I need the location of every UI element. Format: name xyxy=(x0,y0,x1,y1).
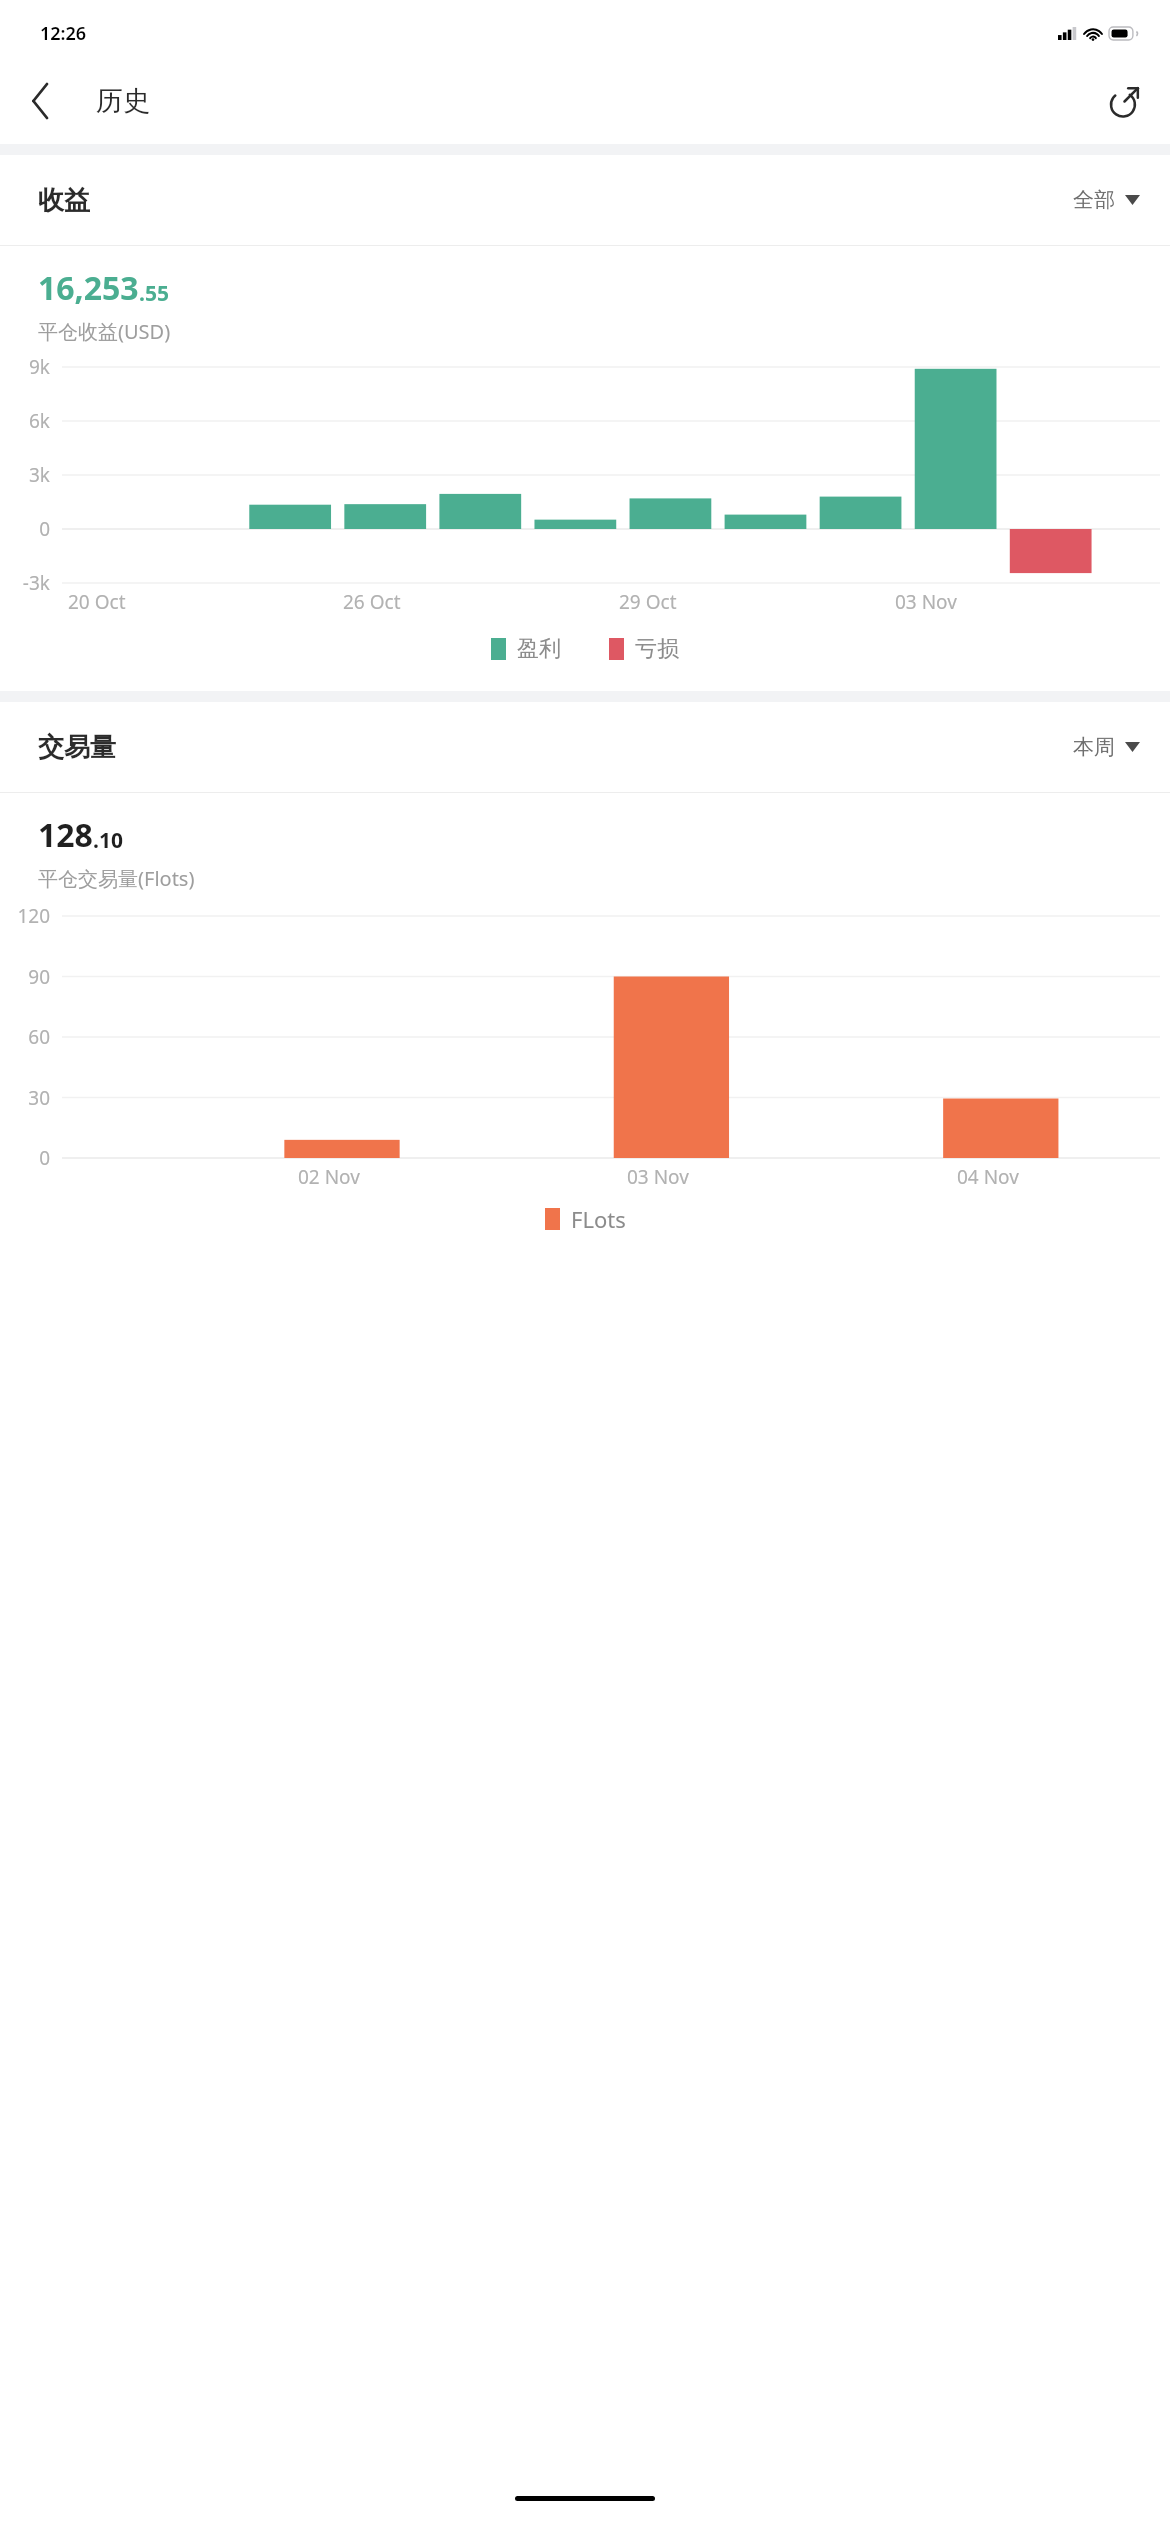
button[interactable]: Share xyxy=(1094,71,1154,131)
staticText: 收益 xyxy=(38,184,90,217)
staticText: 03 Nov xyxy=(895,589,957,615)
button[interactable]: 亏损 xyxy=(607,631,681,667)
button[interactable]: Back xyxy=(12,72,70,130)
button[interactable]: 本周 xyxy=(1067,724,1146,770)
staticText: 0 xyxy=(0,516,50,542)
staticText: -3k xyxy=(0,570,50,596)
staticText: 交易量 xyxy=(38,731,116,764)
staticText: .55 xyxy=(139,279,169,308)
button[interactable]: 全部 xyxy=(1067,177,1146,223)
staticText: 29 Oct xyxy=(619,589,677,615)
staticText: 盈利 xyxy=(517,635,561,663)
staticText: 128 xyxy=(38,813,93,857)
staticText: 20 Oct xyxy=(68,589,126,615)
staticText: 120 xyxy=(0,903,50,929)
staticText: .10 xyxy=(93,826,123,855)
staticText: 30 xyxy=(0,1085,50,1111)
staticText: 本周 xyxy=(1073,734,1115,760)
staticText: 3k xyxy=(0,462,50,488)
staticText: 26 Oct xyxy=(343,589,401,615)
staticText: 16,253 xyxy=(38,266,139,310)
staticText: 60 xyxy=(0,1024,50,1050)
staticText: 亏损 xyxy=(635,635,679,663)
staticText: 90 xyxy=(0,964,50,990)
staticText: 0 xyxy=(0,1145,50,1171)
button[interactable]: FLots xyxy=(543,1200,628,1238)
staticText: 全部 xyxy=(1073,187,1115,213)
staticText: 02 Nov xyxy=(298,1164,360,1190)
staticText: FLots xyxy=(571,1204,626,1234)
staticText: 12:26 xyxy=(40,21,87,46)
staticText: 03 Nov xyxy=(627,1164,689,1190)
staticText: 历史 xyxy=(96,84,150,118)
staticText: 6k xyxy=(0,408,50,434)
button[interactable]: 盈利 xyxy=(489,631,563,667)
staticText: 04 Nov xyxy=(957,1164,1019,1190)
staticText: 平仓收益(USD) xyxy=(38,318,171,345)
staticText: 平仓交易量(Flots) xyxy=(38,865,195,892)
staticText: 9k xyxy=(0,354,50,380)
